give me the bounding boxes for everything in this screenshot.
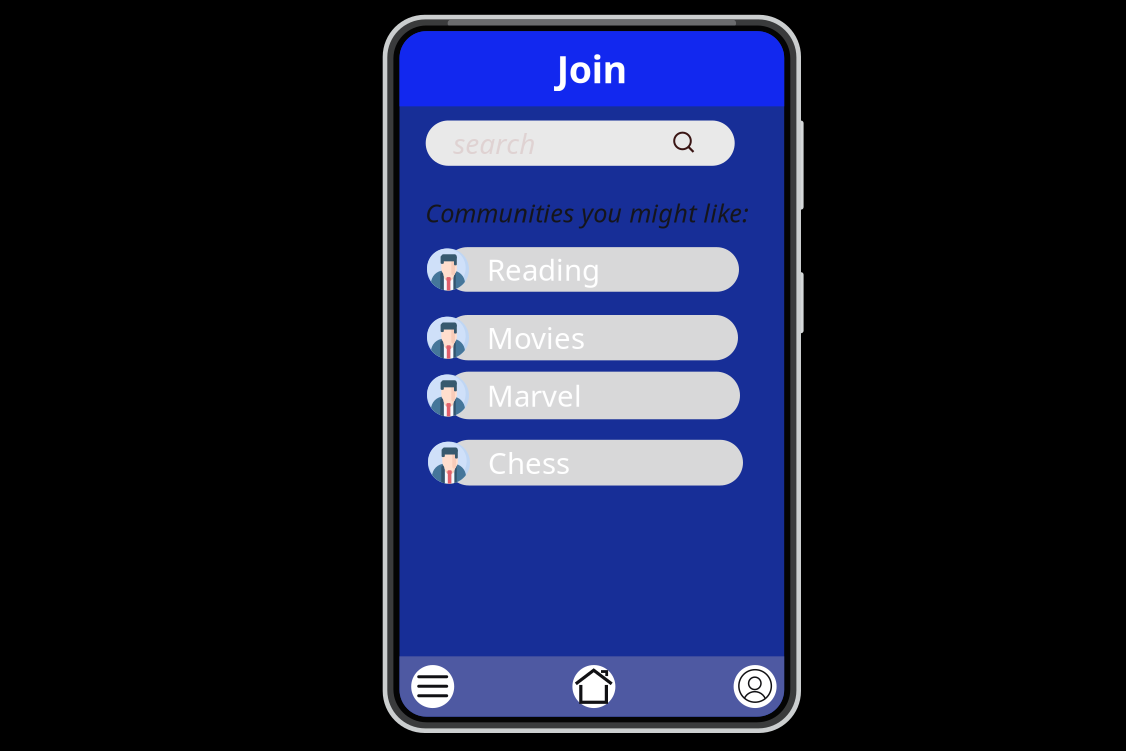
button[interactable]: Marvel <box>429 372 740 419</box>
button[interactable]: Menu <box>411 665 454 708</box>
button[interactable]: Home <box>572 665 615 708</box>
staticText: Movies <box>487 318 585 357</box>
staticText: Chess <box>488 443 570 482</box>
staticText: Join <box>557 44 627 94</box>
button[interactable]: Profile <box>734 665 777 708</box>
staticText: Reading <box>487 250 600 289</box>
staticText: Communities you might like: <box>425 196 748 229</box>
button[interactable]: Reading <box>429 247 739 292</box>
staticText: search <box>453 125 535 162</box>
button[interactable]: Movies <box>429 315 738 360</box>
button[interactable]: search <box>426 120 735 166</box>
staticText: Marvel <box>487 376 582 415</box>
button[interactable]: Chess <box>430 440 743 485</box>
